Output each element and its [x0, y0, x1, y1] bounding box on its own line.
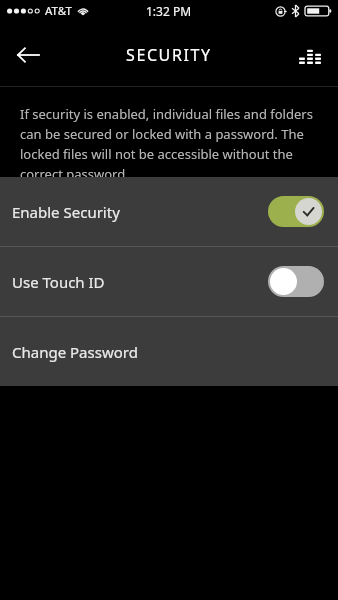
button[interactable]: On — [268, 196, 324, 227]
button[interactable]: Change Password — [0, 317, 338, 386]
staticText: Enable Security — [12, 202, 120, 222]
button[interactable]: Use Touch ID — [0, 247, 338, 316]
staticText: 1:32 PM — [146, 3, 192, 19]
button[interactable]: Off — [268, 266, 324, 297]
staticText: Change Password — [12, 342, 138, 362]
staticText: Use Touch ID — [12, 272, 105, 292]
staticText: If security is enabled, individual files… — [20, 105, 320, 177]
staticText: SECURITY — [126, 44, 212, 66]
button[interactable]: Enable Security — [0, 177, 338, 246]
button[interactable]: Back — [6, 33, 50, 77]
button[interactable]: Sort options — [288, 33, 332, 77]
staticText: AT&T — [45, 3, 72, 19]
